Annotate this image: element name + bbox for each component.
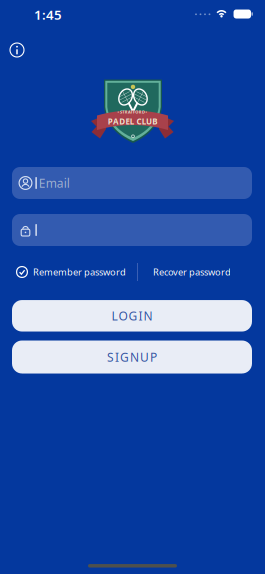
button[interactable]: SIGNUP xyxy=(12,340,252,373)
button[interactable]: LOGIN xyxy=(12,300,252,332)
button[interactable]: Remember password xyxy=(16,266,126,278)
staticText: PADEL CLUB xyxy=(108,116,157,127)
button[interactable]: Info xyxy=(9,42,25,58)
staticText: Recover password xyxy=(153,266,231,278)
staticText: Email xyxy=(39,175,70,191)
button[interactable]: Recover password xyxy=(153,266,231,278)
staticText: •STRATFORD• xyxy=(117,109,147,115)
staticText: Remember password xyxy=(33,266,126,278)
staticText: SIGNUP xyxy=(107,349,157,365)
staticText: LOGIN xyxy=(111,308,152,324)
button[interactable]: Password xyxy=(12,214,252,246)
button[interactable]: Email xyxy=(12,167,252,199)
staticText: 1:45 xyxy=(34,6,62,23)
